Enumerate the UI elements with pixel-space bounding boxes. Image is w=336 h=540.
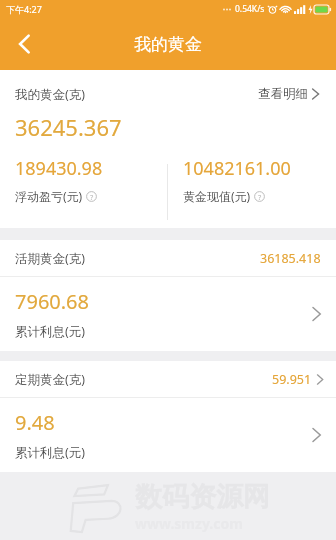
staticText: 查看明细 [258,86,308,102]
staticText: 我的黄金 [134,34,202,55]
button[interactable]: Help [254,191,265,202]
staticText: 我的黄金(克) [15,86,86,103]
staticText: 59.951 [272,371,312,388]
staticText: 累计利息(元) [15,323,86,340]
staticText: 36245.367 [15,112,122,142]
button[interactable]: 定期黄金(克) [0,361,336,397]
staticText: 7960.68 [15,288,89,315]
staticText: 下午4:27 [6,3,42,15]
staticText: 9.48 [15,409,55,436]
staticText: 36185.418 [260,250,321,267]
button[interactable]: Back [0,20,48,68]
staticText: ? [258,192,262,202]
staticText: 189430.98 [15,156,103,181]
staticText: 数码资源网 [135,480,270,514]
staticText: 累计利息(元) [15,444,86,461]
staticText: 黄金现值(元) [183,188,251,204]
staticText: 0.54K/s [235,3,265,15]
staticText: 浮动盈亏(元) [15,188,83,204]
button[interactable]: 7960.68 [0,277,336,351]
button[interactable]: 9.48 [0,398,336,472]
button[interactable]: 查看明细 [254,82,324,106]
staticText: 定期黄金(克) [15,371,86,388]
button[interactable]: 活期黄金(克) [0,240,336,276]
staticText: ? [90,192,94,202]
staticText: 活期黄金(克) [15,250,86,267]
button[interactable]: Help [86,191,97,202]
staticText: 10482161.00 [183,156,291,181]
